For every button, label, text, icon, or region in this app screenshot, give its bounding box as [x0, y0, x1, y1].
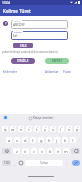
button[interactable]: f — [30, 137, 36, 143]
staticText: h — [48, 138, 51, 143]
button[interactable]: n — [55, 148, 61, 154]
button[interactable]: Kelimeler — [3, 70, 18, 74]
button[interactable]: m — [63, 148, 69, 154]
staticText: 5 — [37, 126, 39, 129]
staticText: y — [44, 127, 47, 132]
staticText: ? — [5, 21, 7, 26]
staticText: 2 — [13, 126, 15, 129]
button[interactable]: Comma — [12, 159, 18, 167]
staticText: c — [33, 149, 35, 154]
button[interactable]: Anlamlar — [45, 70, 59, 74]
button[interactable]: e — [18, 126, 24, 132]
staticText: , — [14, 161, 16, 166]
staticText: TEMİZLE — [17, 59, 29, 63]
staticText: Metin — [14, 19, 21, 22]
button[interactable]: g — [38, 137, 44, 143]
staticText: a — [8, 138, 11, 143]
button[interactable]: Puan — [63, 70, 71, 74]
button[interactable]: Backspace — [71, 148, 80, 154]
staticText: 7 — [53, 126, 55, 129]
button[interactable] — [11, 31, 68, 40]
button[interactable]: Emoji — [18, 159, 24, 167]
staticText: m — [64, 149, 68, 154]
staticText: p — [76, 127, 79, 132]
button[interactable]: i — [58, 126, 64, 132]
staticText: EKLE — [20, 44, 27, 48]
button[interactable]: d — [22, 137, 28, 143]
staticText: b — [49, 149, 52, 154]
staticText: KAYDET — [52, 59, 63, 63]
staticText: Kelime Türet — [3, 8, 31, 14]
staticText: 10:04 — [2, 1, 11, 5]
button[interactable]: u — [50, 126, 56, 132]
staticText: u — [52, 127, 55, 132]
staticText: i — [60, 127, 62, 132]
button[interactable]: h — [46, 137, 52, 143]
button[interactable] — [11, 20, 68, 29]
button[interactable]: q — [2, 126, 8, 132]
button[interactable]: o — [66, 126, 72, 132]
staticText: 4 — [29, 126, 31, 129]
staticText: . — [66, 161, 68, 166]
button[interactable]: Enter — [72, 160, 80, 166]
button[interactable]: a — [6, 137, 12, 143]
staticText: Türkçe — [40, 161, 49, 165]
button[interactable]: Period — [64, 159, 70, 167]
button[interactable]: EKLE — [13, 43, 33, 48]
staticText: d — [24, 138, 27, 143]
staticText: 9 — [69, 126, 71, 129]
staticText: f — [32, 138, 34, 143]
button[interactable]: r — [26, 126, 32, 132]
staticText: yukarı kelimeyi yazarak ekle butonuna ba… — [2, 50, 58, 54]
staticText: l — [72, 138, 74, 143]
staticText: e — [20, 127, 23, 132]
button[interactable]: x — [22, 148, 29, 154]
button[interactable]: y — [42, 126, 48, 132]
button[interactable]: c — [31, 148, 37, 154]
staticText: ?123 — [4, 161, 10, 165]
staticText: g — [40, 138, 43, 143]
button[interactable]: t — [34, 126, 40, 132]
button[interactable]: ?123 — [2, 160, 11, 166]
staticText: 1 — [5, 126, 7, 129]
button[interactable]: Space — [25, 160, 63, 166]
button[interactable]: z — [13, 148, 20, 154]
staticText: v — [41, 149, 44, 154]
button[interactable]: Shift — [2, 148, 11, 154]
staticText: o — [68, 127, 71, 132]
staticText: Klavye önerileri — [33, 116, 54, 120]
staticText: kel — [13, 34, 18, 38]
button[interactable]: p — [74, 126, 80, 132]
button[interactable]: TEMİZLE — [11, 58, 35, 64]
button[interactable]: k — [62, 137, 68, 143]
staticText: Anlamlar — [45, 70, 59, 74]
button[interactable]: j — [54, 137, 60, 143]
staticText: n — [57, 149, 60, 154]
staticText: ABCDEF — [13, 23, 25, 27]
button[interactable]: v — [39, 148, 45, 154]
staticText: 3 — [21, 126, 23, 129]
staticText: j — [56, 138, 58, 143]
staticText: s — [16, 138, 18, 143]
staticText: r — [28, 127, 30, 132]
button[interactable]: w — [10, 126, 16, 132]
staticText: 0 — [77, 126, 79, 129]
staticText: Kelime — [14, 30, 22, 33]
button[interactable]: Help — [3, 21, 8, 26]
staticText: 6 — [45, 126, 47, 129]
button[interactable]: b — [47, 148, 53, 154]
button[interactable]: s — [14, 137, 20, 143]
staticText: k — [64, 138, 67, 143]
staticText: x — [24, 149, 27, 154]
staticText: Kelimeler — [3, 70, 18, 74]
staticText: w — [11, 127, 15, 132]
staticText: 8 — [61, 126, 63, 129]
staticText: z — [16, 149, 18, 154]
button[interactable]: l — [70, 137, 76, 143]
staticText: t — [36, 127, 38, 132]
staticText: Puan — [63, 70, 71, 74]
staticText: q — [4, 127, 7, 132]
button[interactable]: Gboard settings — [3, 115, 8, 120]
button[interactable]: KAYDET — [45, 58, 69, 64]
